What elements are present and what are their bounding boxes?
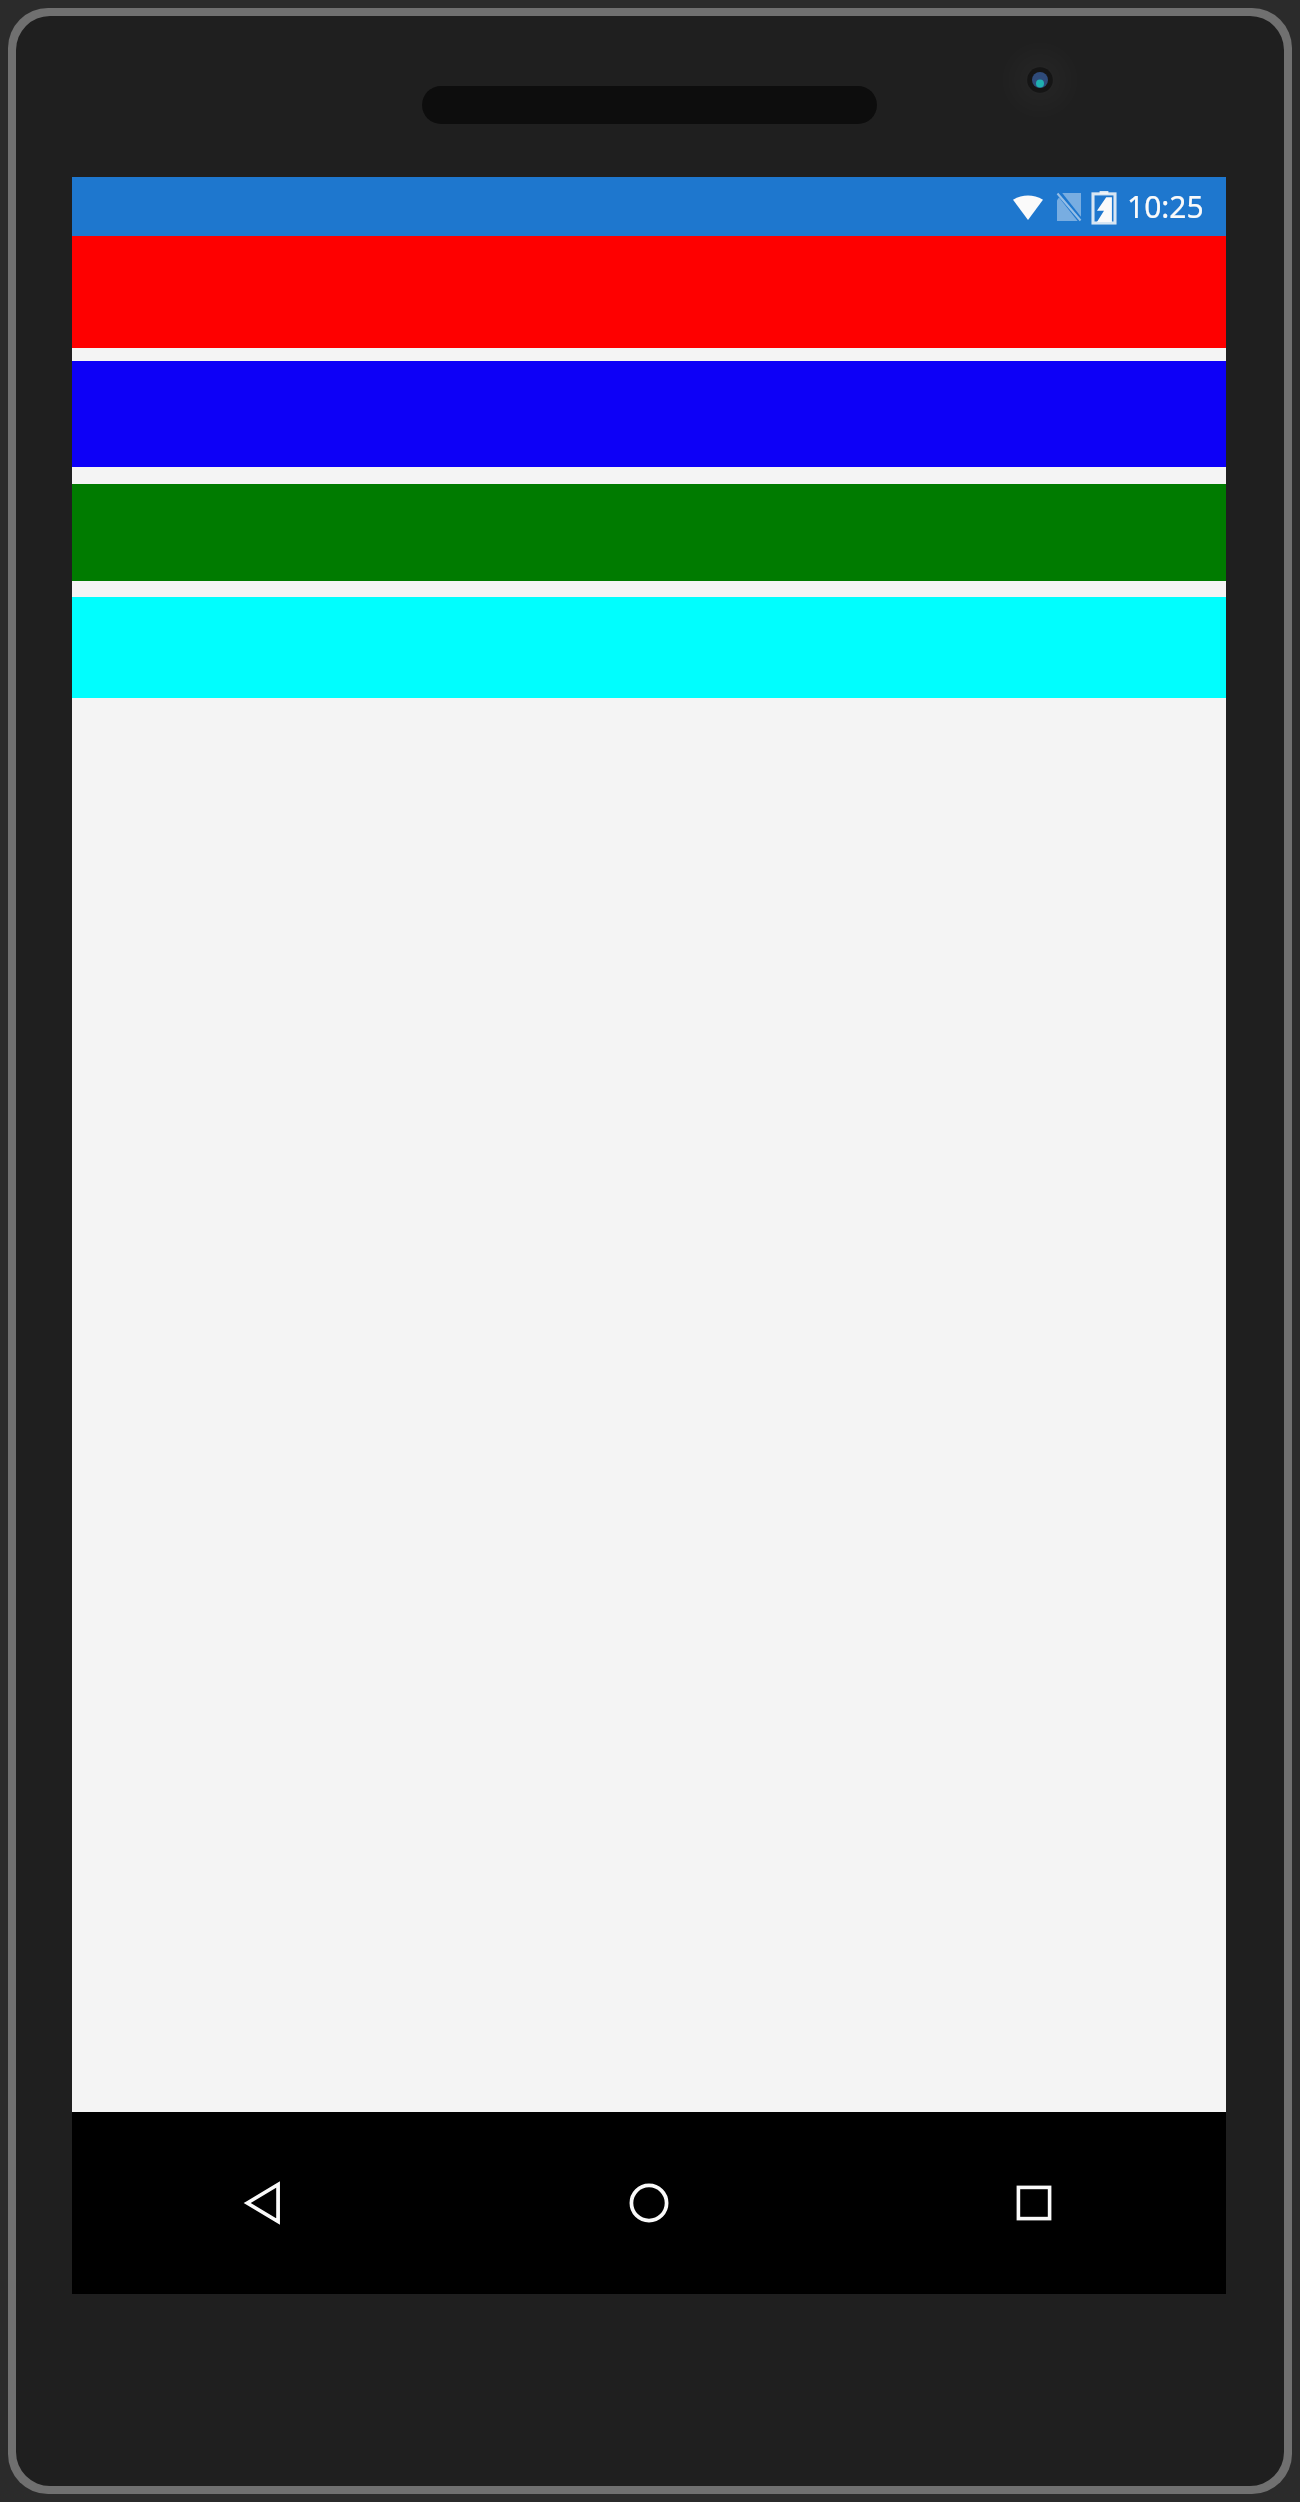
staticText: 10:25 [1127,186,1204,227]
button[interactable]: Recent apps [841,2112,1226,2294]
button[interactable]: Home [456,2112,841,2294]
button[interactable]: Back [72,2112,456,2294]
